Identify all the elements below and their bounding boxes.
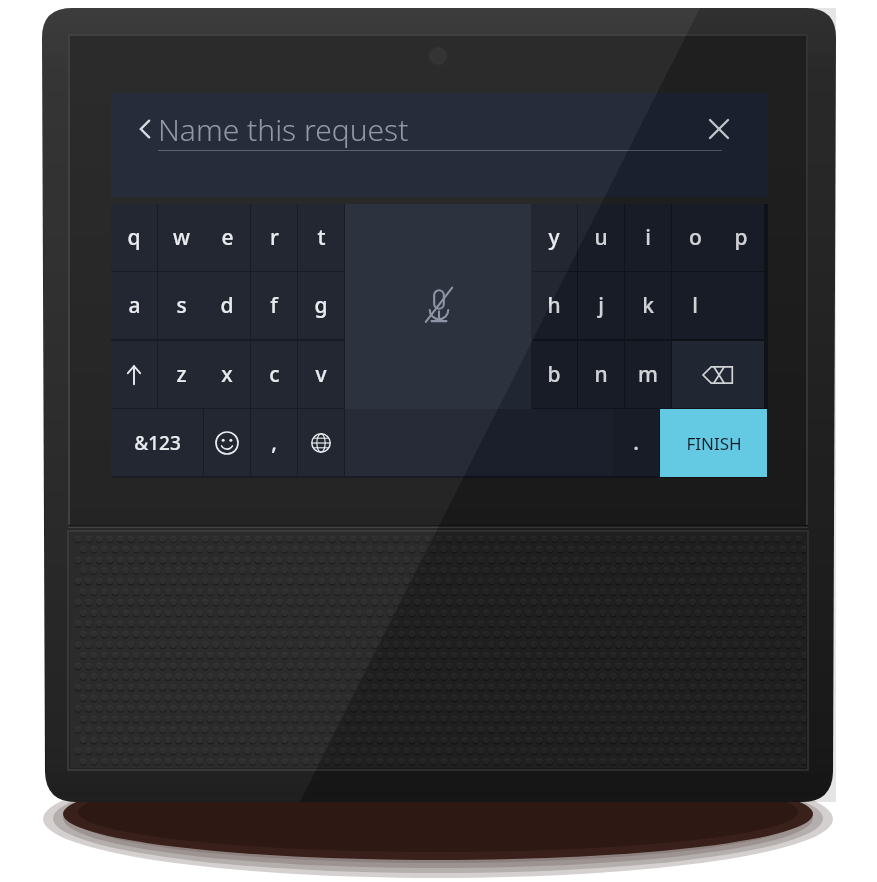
button[interactable]: n	[578, 341, 624, 408]
staticText: m	[638, 360, 658, 389]
button[interactable]: &123	[111, 409, 203, 476]
button[interactable]: Backspace	[672, 341, 764, 408]
button[interactable]: t	[298, 204, 344, 271]
button[interactable]: Space	[345, 409, 613, 476]
button[interactable]: m	[625, 341, 671, 408]
button[interactable]: h	[531, 272, 577, 339]
button[interactable]: w	[158, 204, 204, 271]
button[interactable]: c	[251, 341, 297, 408]
button[interactable]: v	[298, 341, 344, 408]
staticText: q	[127, 223, 141, 252]
staticText: f	[270, 291, 278, 320]
button[interactable]: y	[531, 204, 577, 271]
staticText: o	[689, 223, 702, 252]
button[interactable]: s	[158, 272, 204, 339]
staticText: n	[594, 360, 608, 389]
button[interactable]: Back	[121, 105, 169, 153]
button[interactable]: x	[204, 341, 250, 408]
button[interactable]: r	[251, 204, 297, 271]
button[interactable]: Microphone muted	[345, 204, 532, 409]
staticText: &123	[134, 430, 181, 456]
staticText: d	[220, 291, 234, 320]
staticText: p	[734, 223, 748, 252]
staticText: y	[548, 223, 560, 252]
button[interactable]: u	[578, 204, 624, 271]
staticText: l	[692, 291, 698, 320]
staticText: j	[598, 291, 604, 320]
button[interactable]: Close	[695, 105, 743, 153]
button[interactable]: q	[111, 204, 157, 271]
staticText: i	[645, 223, 651, 252]
staticText: e	[221, 223, 234, 252]
button[interactable]: Change language	[298, 409, 344, 476]
button[interactable]: e	[204, 204, 250, 271]
button[interactable]: FINISH	[660, 409, 767, 477]
button[interactable]: d	[204, 272, 250, 339]
button[interactable]: l	[672, 272, 718, 339]
staticText: x	[221, 360, 233, 389]
button[interactable]: k	[625, 272, 671, 339]
staticText: w	[173, 223, 190, 252]
staticText: a	[128, 291, 141, 320]
staticText: u	[594, 223, 608, 252]
staticText: k	[642, 291, 654, 320]
button[interactable]: a	[111, 272, 157, 339]
staticText: z	[176, 360, 187, 389]
button[interactable]: Emoji	[204, 409, 250, 476]
button[interactable]: j	[578, 272, 624, 339]
staticText: b	[547, 360, 561, 389]
button[interactable]: ,	[251, 409, 297, 476]
staticText: g	[314, 291, 328, 320]
button[interactable]: Shift	[111, 341, 157, 408]
button[interactable]: z	[158, 341, 204, 408]
staticText: Name this request	[158, 109, 409, 150]
button[interactable]: i	[625, 204, 671, 271]
button[interactable]: g	[298, 272, 344, 339]
staticText: v	[315, 360, 327, 389]
staticText: t	[317, 223, 326, 252]
button[interactable]: f	[251, 272, 297, 339]
staticText: ,	[271, 428, 277, 457]
staticText: FINISH	[686, 432, 742, 455]
staticText: h	[547, 291, 561, 320]
staticText: r	[270, 223, 279, 252]
staticText: s	[176, 291, 187, 320]
staticText: c	[269, 360, 280, 389]
button[interactable]: p	[718, 204, 764, 271]
button[interactable]: o	[672, 204, 718, 271]
button[interactable]: b	[531, 341, 577, 408]
button[interactable]: .	[613, 409, 659, 476]
staticText: .	[633, 428, 639, 457]
